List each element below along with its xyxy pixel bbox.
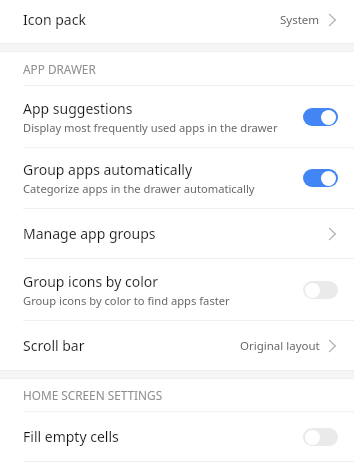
button[interactable]: Scroll bar xyxy=(0,321,354,370)
button[interactable]: App suggestions, on xyxy=(303,106,338,128)
staticText: Manage app groups xyxy=(23,224,156,243)
staticText: App suggestions xyxy=(23,99,133,118)
button[interactable]: Group icons by color xyxy=(0,259,354,320)
button[interactable]: Group apps automatically, on xyxy=(303,167,338,189)
staticText: System xyxy=(280,12,320,28)
staticText: Fill empty cells xyxy=(23,427,119,446)
button[interactable]: Group apps automatically xyxy=(0,148,354,208)
button[interactable]: Fill empty cells xyxy=(0,412,354,461)
other: Open Manage app groups xyxy=(326,223,338,245)
staticText: HOME SCREEN SETTINGS xyxy=(23,387,163,403)
staticText: Group icons by color to find apps faster xyxy=(23,293,230,308)
button[interactable]: Manage app groups xyxy=(0,209,354,258)
button[interactable]: App suggestions xyxy=(0,86,354,147)
staticText: Scroll bar xyxy=(23,336,85,355)
other: Open Scroll bar xyxy=(326,335,338,357)
staticText: Categorize apps in the drawer automatica… xyxy=(23,181,255,196)
staticText: Group icons by color xyxy=(23,272,159,291)
staticText: Display most frequently used apps in the… xyxy=(23,120,278,135)
staticText: Original layout xyxy=(240,338,320,354)
staticText: APP DRAWER xyxy=(23,61,96,77)
other: Open Icon pack xyxy=(326,9,338,31)
staticText: Icon pack xyxy=(23,10,280,29)
button[interactable]: Group icons by color, off xyxy=(303,279,338,301)
button[interactable]: Icon pack xyxy=(0,0,354,39)
staticText: Group apps automatically xyxy=(23,160,193,179)
button[interactable]: Fill empty cells, off xyxy=(303,426,338,448)
